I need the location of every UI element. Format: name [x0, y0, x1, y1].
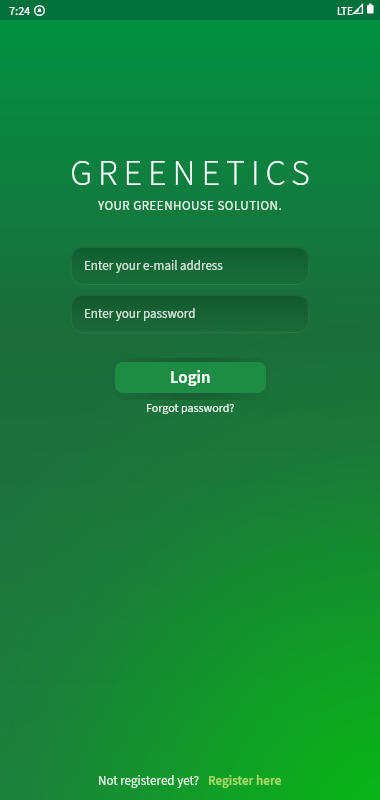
staticText: LTE: [337, 4, 353, 20]
staticText: Login: [170, 366, 211, 390]
staticText: Enter your password: [84, 305, 196, 324]
staticText: GREENETICS: [3, 148, 380, 199]
staticText: 7:24: [9, 3, 31, 20]
button[interactable]: Forgot password?: [140, 399, 241, 418]
staticText: Not registered yet?: [98, 772, 200, 791]
button[interactable]: Enter your e-mail address: [71, 247, 309, 285]
staticText: Forgot password?: [146, 400, 235, 417]
staticText: YOUR GREENHOUSE SOLUTION.: [0, 197, 380, 216]
button[interactable]: Enter your password: [71, 295, 309, 333]
other: Alarm set: [34, 5, 45, 16]
other: Mobile signal: [353, 4, 363, 14]
staticText: Register here: [208, 772, 282, 791]
button[interactable]: Login: [115, 362, 266, 393]
staticText: Enter your e-mail address: [84, 257, 223, 276]
other: Battery: [367, 3, 375, 15]
button[interactable]: Register here: [207, 772, 283, 791]
